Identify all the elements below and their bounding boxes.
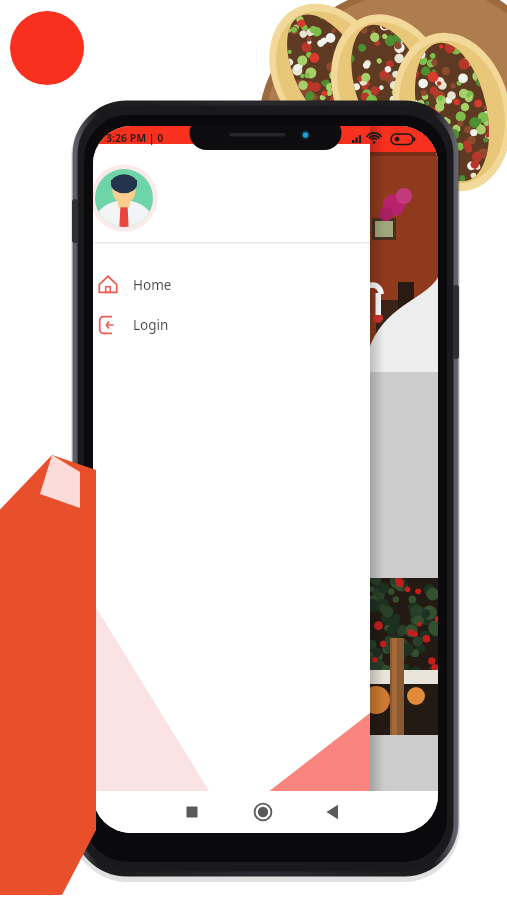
button[interactable]: Login xyxy=(93,306,370,344)
staticText: 3:26 PM | 0 xyxy=(106,131,164,145)
button[interactable]: Recents xyxy=(170,790,214,832)
button[interactable]: Home xyxy=(241,790,285,832)
button[interactable]: Home xyxy=(93,266,370,304)
staticText: Home xyxy=(133,276,172,294)
button[interactable]: Profile xyxy=(95,164,163,232)
button[interactable]: Back xyxy=(311,790,355,832)
staticText: Login xyxy=(133,316,169,334)
